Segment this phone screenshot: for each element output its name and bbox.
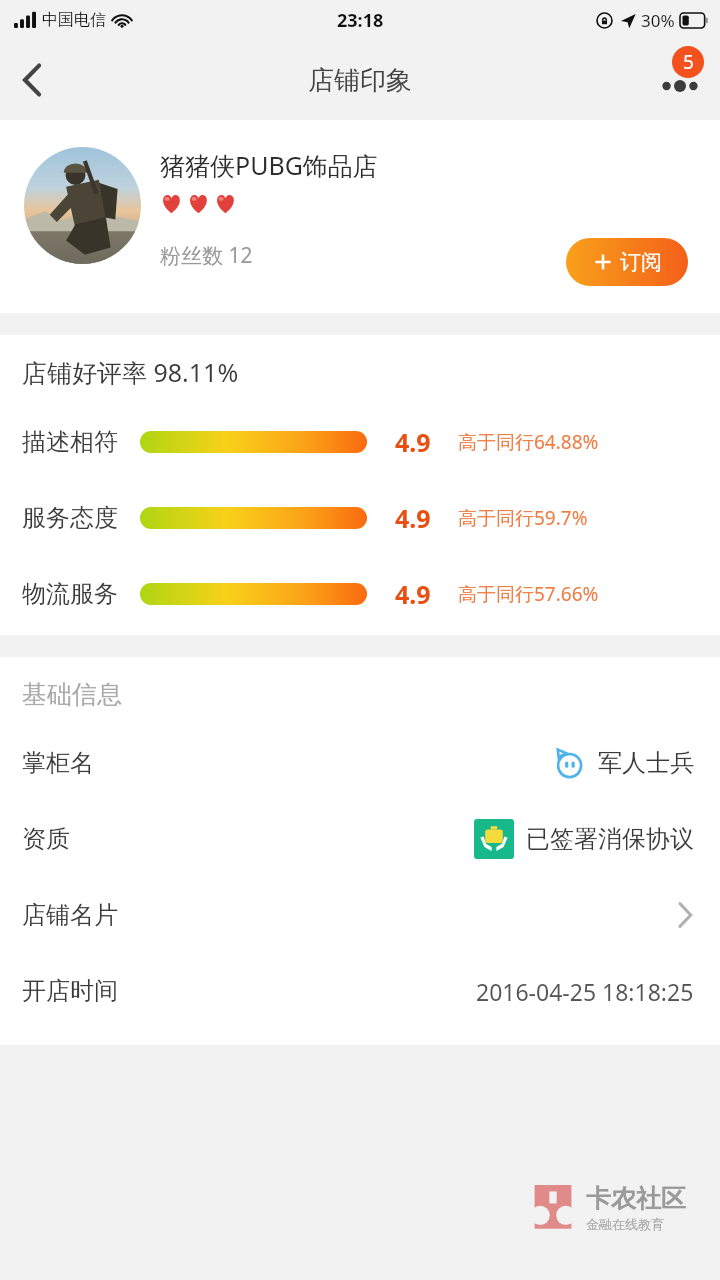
- staticText: 30%: [641, 9, 675, 32]
- button[interactable]: 描述相符: [0, 419, 720, 465]
- staticText: 物流服务: [22, 579, 118, 609]
- staticText: 中国电信: [42, 10, 106, 30]
- staticText: 店铺好评率 98.11%: [22, 355, 239, 389]
- staticText: 23:18: [337, 8, 384, 33]
- staticText: 开店时间: [22, 976, 118, 1006]
- button[interactable]: 资质: [0, 816, 720, 862]
- staticText: 4.9: [395, 425, 431, 459]
- staticText: 金融在线教育: [586, 1216, 664, 1232]
- staticText: 店铺名片: [22, 900, 118, 930]
- button[interactable]: Back: [0, 48, 64, 112]
- staticText: 店铺印象: [308, 64, 412, 97]
- staticText: 基础信息: [22, 679, 122, 710]
- staticText: 高于同行59.7%: [458, 505, 588, 531]
- button[interactable]: 服务态度: [0, 495, 720, 541]
- button[interactable]: 物流服务: [0, 571, 720, 617]
- staticText: 2016-04-25 18:18:25: [476, 976, 694, 1007]
- staticText: 军人士兵: [598, 748, 694, 778]
- button[interactable]: Shop avatar: [24, 147, 141, 264]
- staticText: 服务态度: [22, 503, 118, 533]
- button[interactable]: 掌柜名: [0, 740, 720, 786]
- button[interactable]: More options: [648, 48, 712, 112]
- staticText: 订阅: [620, 249, 662, 275]
- button[interactable]: 订阅: [566, 238, 688, 286]
- staticText: 掌柜名: [22, 748, 94, 778]
- staticText: 粉丝数 12: [160, 241, 253, 270]
- staticText: 5: [683, 49, 694, 75]
- staticText: 描述相符: [22, 427, 118, 457]
- staticText: 4.9: [395, 501, 431, 535]
- staticText: 高于同行64.88%: [458, 429, 599, 455]
- staticText: 4.9: [395, 577, 431, 611]
- staticText: 资质: [22, 824, 70, 854]
- staticText: 已签署消保协议: [526, 824, 694, 854]
- staticText: 猪猪侠PUBG饰品店: [160, 148, 378, 182]
- staticText: 高于同行57.66%: [458, 581, 599, 607]
- staticText: 卡农社区: [586, 1183, 686, 1214]
- button[interactable]: 店铺名片: [0, 892, 720, 938]
- button[interactable]: 开店时间: [0, 968, 720, 1014]
